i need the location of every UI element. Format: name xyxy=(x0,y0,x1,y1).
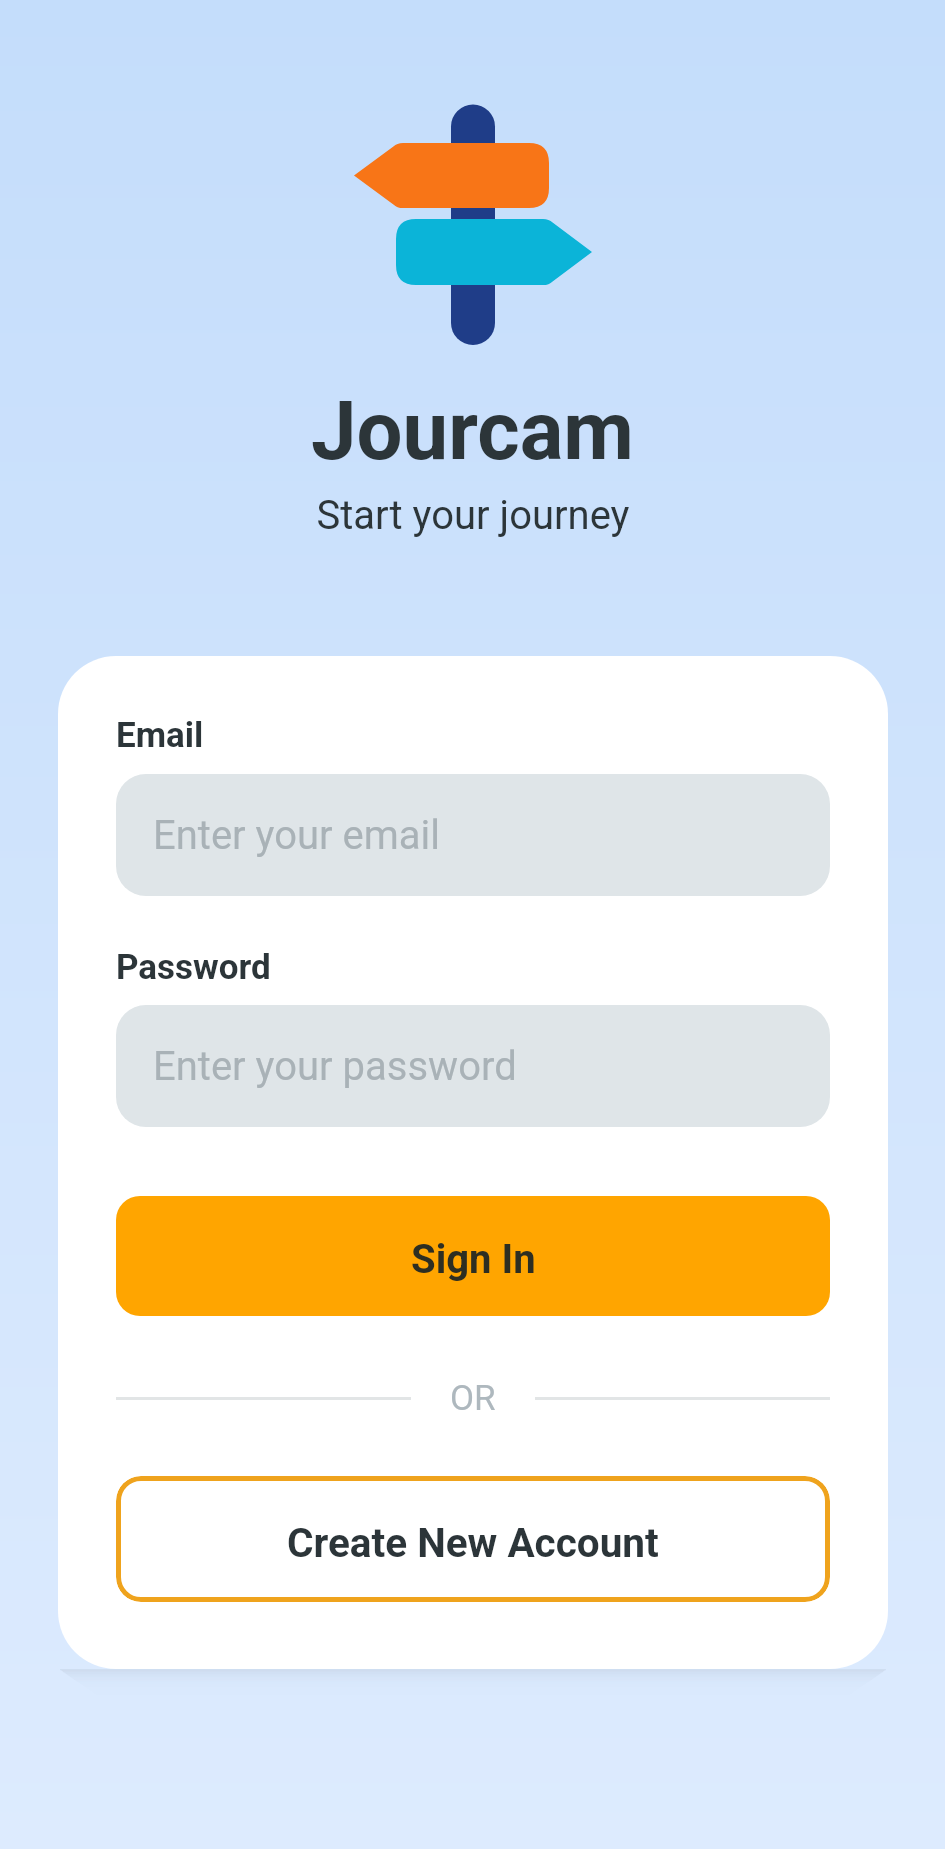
staticText: OR xyxy=(450,1378,496,1419)
other: Jourcam signpost logo xyxy=(340,100,610,355)
staticText: Jourcam xyxy=(311,383,634,479)
staticText: Enter your email xyxy=(153,812,441,859)
staticText: Start your journey xyxy=(316,492,630,539)
button[interactable]: Create New Account xyxy=(116,1476,830,1602)
staticText: Create New Account xyxy=(287,1519,659,1566)
button[interactable]: Sign In xyxy=(116,1196,830,1316)
staticText: Password xyxy=(116,947,271,988)
staticText: Email xyxy=(116,715,204,756)
button[interactable]: Enter your password xyxy=(116,1005,830,1127)
button[interactable]: Enter your email xyxy=(116,774,830,896)
staticText: Enter your password xyxy=(153,1043,517,1090)
staticText: Sign In xyxy=(411,1236,536,1283)
